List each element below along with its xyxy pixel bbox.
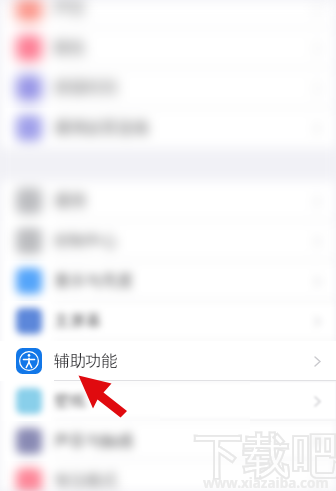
staticText: 通用 — [54, 191, 86, 211]
button[interactable]: 聚焦 — [0, 28, 336, 68]
button[interactable]: 主屏幕 — [0, 301, 336, 341]
button[interactable]: 屏幕时间 — [0, 68, 336, 108]
staticText: 聚焦 — [54, 38, 86, 58]
button[interactable]: 专注模式 — [0, 461, 336, 491]
staticText: 专注模式 — [54, 471, 118, 491]
button[interactable]: 通用 — [0, 181, 336, 221]
staticText: 主屏幕 — [54, 311, 102, 331]
button[interactable]: 通用设置选项 — [0, 108, 336, 148]
staticText: 壁纸 — [54, 391, 86, 411]
staticText: 屏幕时间 — [54, 78, 118, 98]
staticText: 辅助功能 — [54, 351, 118, 371]
button[interactable]: 显示与亮度 — [0, 261, 336, 301]
staticText: www.xiazaiba.com — [203, 474, 329, 491]
button[interactable]: 辅助功能 — [0, 341, 336, 381]
button[interactable]: 声音与触感 — [0, 421, 250, 461]
staticText: 声音与触感 — [54, 431, 133, 451]
button[interactable]: 壁纸 — [0, 381, 160, 421]
staticText: 下载吧 — [194, 428, 336, 487]
button[interactable]: 声音与触感 — [250, 421, 336, 461]
button[interactable]: 控制中心 — [0, 221, 336, 261]
staticText: 显示与亮度 — [54, 271, 133, 291]
button[interactable]: 壁纸 — [250, 381, 336, 421]
staticText: 控制中心 — [54, 231, 118, 251]
staticText: 声音 — [54, 0, 86, 18]
button[interactable]: 声音 — [0, 0, 336, 28]
staticText: 通用设置选项 — [54, 118, 149, 138]
